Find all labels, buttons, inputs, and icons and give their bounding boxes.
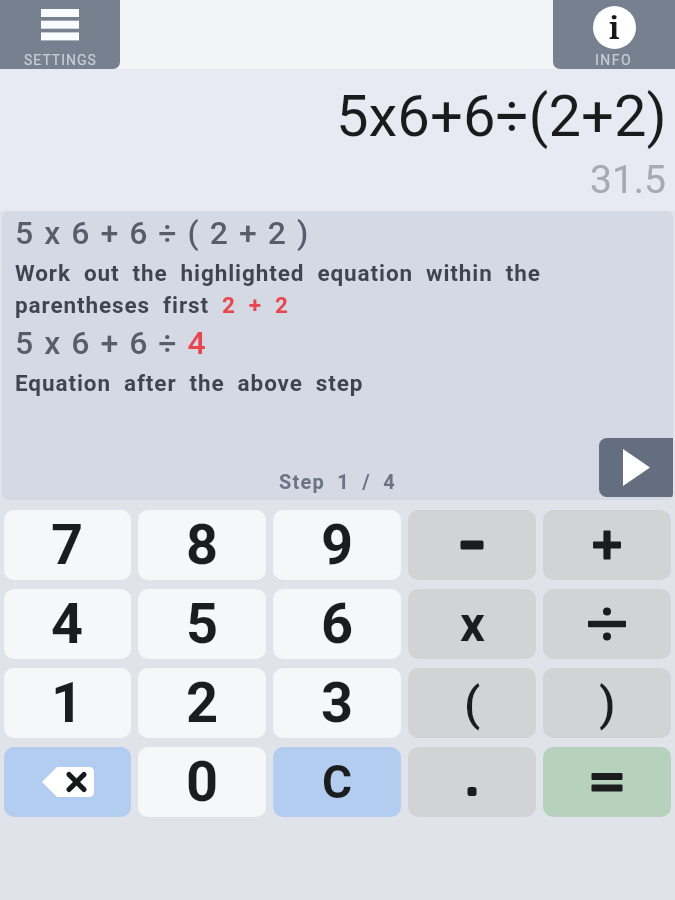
button[interactable]: 8: [138, 510, 266, 580]
button[interactable]: SETTINGS: [0, 0, 120, 69]
staticText: 5: [186, 591, 219, 657]
button[interactable]: [543, 747, 671, 817]
staticText: 7: [51, 512, 84, 578]
button[interactable]: 3: [273, 668, 401, 738]
staticText: 6: [321, 591, 354, 657]
staticText: 31.5: [590, 157, 667, 203]
staticText: INFO: [595, 52, 633, 68]
staticText: 1: [51, 670, 84, 736]
button[interactable]: [408, 510, 536, 580]
button[interactable]: 9: [273, 510, 401, 580]
staticText: 5 x 6 + 6 ÷ 4: [15, 324, 208, 362]
staticText: C: [322, 755, 353, 809]
button[interactable]: 6: [273, 589, 401, 659]
staticText: 5 x 6 + 6 ÷ ( 2 + 2 ): [15, 214, 310, 252]
staticText: Work out the highlighted equation within…: [15, 260, 541, 319]
button[interactable]: [543, 510, 671, 580]
staticText: ): [599, 676, 616, 731]
staticText: Equation after the above step: [15, 370, 364, 396]
staticText: 0: [186, 749, 219, 815]
staticText: 5x6+6÷(2+2): [336, 82, 667, 150]
button[interactable]: i: [553, 0, 675, 69]
button[interactable]: 1: [4, 668, 131, 738]
button[interactable]: [408, 747, 536, 817]
staticText: (: [464, 676, 481, 731]
button[interactable]: [4, 747, 131, 817]
button[interactable]: 7: [4, 510, 131, 580]
staticText: 9: [321, 512, 354, 578]
button[interactable]: C: [273, 747, 401, 817]
button[interactable]: 2: [138, 668, 266, 738]
button[interactable]: [599, 438, 673, 497]
button[interactable]: 5: [138, 589, 266, 659]
button[interactable]: 4: [4, 589, 131, 659]
staticText: 2: [186, 670, 219, 736]
staticText: 8: [186, 512, 219, 578]
button[interactable]: x: [408, 589, 536, 659]
staticText: Step 1 / 4: [279, 470, 397, 493]
button[interactable]: (: [408, 668, 536, 738]
button[interactable]: 0: [138, 747, 266, 817]
staticText: 3: [321, 670, 354, 736]
staticText: 4: [51, 591, 84, 657]
staticText: i: [609, 7, 620, 48]
staticText: x: [460, 596, 485, 653]
button[interactable]: [543, 589, 671, 659]
button[interactable]: ): [543, 668, 671, 738]
staticText: SETTINGS: [24, 52, 97, 68]
